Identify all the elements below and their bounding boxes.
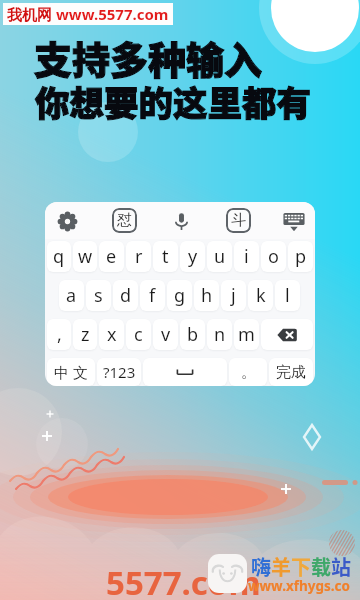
staticText: 羊 — [271, 552, 291, 581]
staticText: w — [78, 244, 93, 269]
staticText: b — [187, 322, 199, 347]
staticText: a — [66, 283, 77, 308]
button[interactable]: j — [221, 280, 246, 311]
button[interactable]: u — [207, 241, 232, 272]
staticText: u — [214, 244, 226, 269]
staticText: f — [149, 283, 156, 308]
staticText: k — [256, 283, 266, 308]
staticText: 载 — [311, 552, 331, 581]
staticText: e — [106, 244, 117, 269]
staticText: c — [134, 322, 143, 347]
staticText: 支持多种输入 — [34, 30, 263, 85]
button[interactable]: f — [140, 280, 165, 311]
staticText: n — [214, 322, 226, 347]
staticText: www.xfhygs.com — [248, 577, 360, 600]
staticText: 支持多种输入 — [34, 30, 263, 85]
staticText: o — [268, 244, 279, 269]
staticText: x — [107, 322, 117, 347]
staticText: 斗 — [231, 211, 246, 230]
staticText: h — [201, 283, 213, 308]
button[interactable]: v — [153, 319, 178, 350]
button[interactable]: 完成 — [269, 358, 313, 386]
staticText: 完成 — [276, 363, 306, 382]
button[interactable]: 。 — [229, 358, 267, 386]
staticText: 5577.com — [106, 560, 261, 600]
button[interactable]: c — [126, 319, 151, 350]
staticText: d — [120, 283, 132, 308]
staticText: 你想要的这里都有 — [35, 76, 311, 126]
button[interactable]: , — [47, 319, 71, 350]
button[interactable]: d — [113, 280, 138, 311]
button[interactable]: a — [59, 280, 84, 311]
button[interactable]: y — [180, 241, 205, 272]
staticText: v — [161, 322, 171, 347]
staticText: 嗨 — [251, 552, 271, 581]
button[interactable]: g — [167, 280, 192, 311]
staticText: y — [188, 244, 198, 269]
staticText: m — [238, 322, 255, 347]
button[interactable]: k — [248, 280, 273, 311]
button[interactable]: Settings — [53, 207, 81, 235]
button[interactable]: i — [234, 241, 259, 272]
button[interactable]: ?123 — [97, 358, 141, 386]
staticText: s — [94, 283, 103, 308]
button[interactable]: m — [234, 319, 259, 350]
button[interactable]: 我机网 — [7, 4, 169, 24]
staticText: i — [244, 244, 249, 269]
button[interactable]: Voice input — [167, 207, 195, 235]
staticText: z — [81, 322, 90, 347]
button[interactable]: 斗 — [226, 208, 251, 233]
staticText: r — [135, 244, 143, 269]
button[interactable]: t — [153, 241, 178, 272]
button[interactable]: b — [180, 319, 205, 350]
staticText: ?123 — [103, 362, 136, 382]
staticText: 你想要的这里都有 — [35, 76, 311, 126]
button[interactable]: q — [47, 241, 71, 272]
button[interactable]: e — [99, 241, 124, 272]
button[interactable]: o — [261, 241, 286, 272]
button[interactable]: l — [275, 280, 300, 311]
button[interactable]: x — [99, 319, 124, 350]
staticText: q — [53, 244, 65, 269]
staticText: 下 — [291, 552, 311, 581]
button[interactable]: Backspace — [261, 319, 313, 350]
button[interactable]: n — [207, 319, 232, 350]
button[interactable]: z — [73, 319, 97, 350]
button[interactable]: 怼 — [112, 208, 137, 233]
staticText: g — [174, 283, 186, 308]
staticText: 站 — [331, 552, 351, 581]
staticText: www.5577.com — [56, 4, 169, 24]
button[interactable]: s — [86, 280, 111, 311]
staticText: 我机网 — [7, 4, 56, 24]
staticText: p — [295, 244, 307, 269]
button[interactable]: Space — [143, 358, 227, 386]
staticText: 中 文 — [54, 362, 88, 382]
staticText: 。 — [241, 363, 256, 382]
staticText: j — [231, 283, 236, 308]
button[interactable]: h — [194, 280, 219, 311]
staticText: , — [57, 322, 62, 347]
button[interactable]: p — [288, 241, 313, 272]
staticText: t — [162, 244, 169, 269]
button[interactable]: Hide keyboard — [281, 208, 307, 234]
staticText: 怼 — [117, 211, 132, 230]
button[interactable]: 中 文 — [47, 358, 95, 386]
button[interactable]: r — [126, 241, 151, 272]
button[interactable]: App icon — [208, 554, 247, 593]
button[interactable]: w — [73, 241, 97, 272]
staticText: l — [285, 283, 290, 308]
